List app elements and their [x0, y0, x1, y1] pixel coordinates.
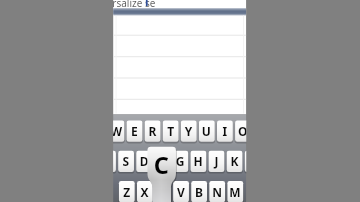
button[interactable]: Text input with on-screen keyboard: [0, 0, 360, 202]
